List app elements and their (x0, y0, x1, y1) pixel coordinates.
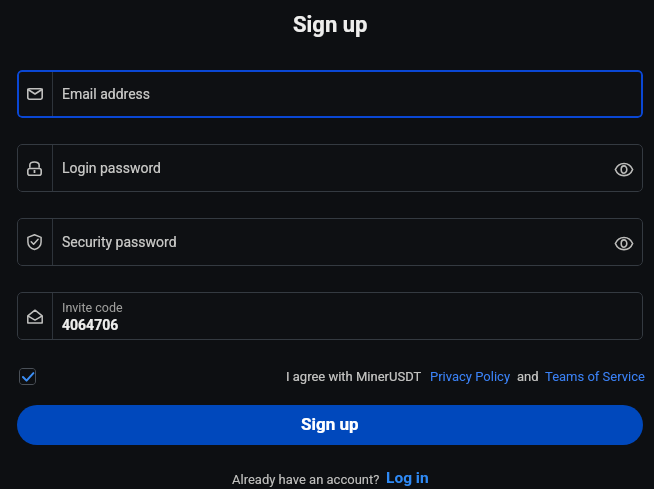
button[interactable]: Login password (17, 144, 643, 192)
staticText: Privacy Policy (430, 369, 511, 384)
staticText: Sign up (301, 414, 359, 434)
button[interactable]: Log in (386, 469, 429, 487)
staticText: Invite code (62, 300, 123, 315)
button[interactable]: Email address (17, 70, 643, 118)
button[interactable]: Teams of Service (545, 369, 645, 384)
staticText: I agree with MinerUSDT (286, 369, 422, 384)
button[interactable]: Show password (613, 230, 637, 254)
button[interactable]: Privacy Policy (430, 369, 511, 384)
staticText: Teams of Service (545, 369, 645, 384)
button[interactable]: Sign up (17, 405, 643, 445)
staticText: Sign up (293, 12, 368, 38)
staticText: 4064706 (62, 317, 119, 333)
staticText: Email address (62, 86, 151, 102)
button[interactable]: Agree to terms (19, 368, 36, 385)
button[interactable]: Invite code (17, 292, 643, 340)
staticText: and (517, 369, 539, 384)
button[interactable]: Show password (613, 156, 637, 180)
staticText: Login password (62, 160, 161, 176)
button[interactable]: Security password (17, 218, 643, 266)
staticText: Already have an account? (232, 472, 380, 487)
staticText: Log in (386, 469, 429, 487)
staticText: Security password (62, 234, 177, 250)
